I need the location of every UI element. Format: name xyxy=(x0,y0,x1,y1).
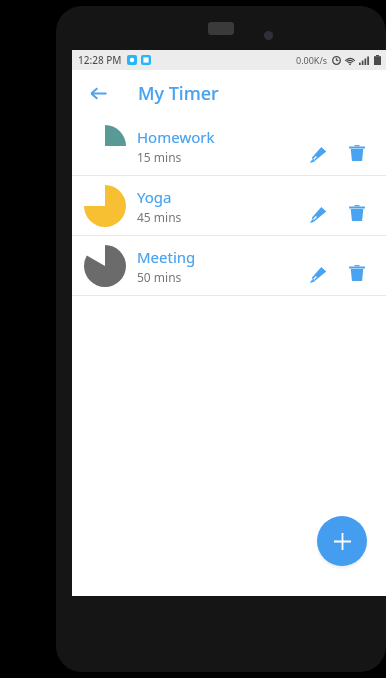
button[interactable]: Meeting xyxy=(72,236,386,296)
button[interactable]: Delete xyxy=(340,256,374,290)
staticText: My Timer xyxy=(138,81,219,106)
button[interactable]: Add timer xyxy=(317,516,367,566)
staticText: 45 mins xyxy=(137,209,182,225)
staticText: 15 mins xyxy=(137,149,182,165)
button[interactable]: Delete xyxy=(340,136,374,170)
staticText: Meeting xyxy=(137,247,196,267)
button[interactable]: Yoga xyxy=(72,176,386,236)
staticText: Homework xyxy=(137,127,215,147)
button[interactable]: Back xyxy=(83,78,113,108)
button[interactable]: Homework xyxy=(72,116,386,176)
staticText: 0.00K/s xyxy=(296,54,328,66)
button[interactable]: Edit xyxy=(300,256,334,290)
button[interactable]: Edit xyxy=(300,136,334,170)
staticText: 12:28 PM xyxy=(78,53,122,67)
staticText: 50 mins xyxy=(137,269,182,285)
staticText: Yoga xyxy=(137,187,172,207)
button[interactable]: Delete xyxy=(340,196,374,230)
button[interactable]: Edit xyxy=(300,196,334,230)
